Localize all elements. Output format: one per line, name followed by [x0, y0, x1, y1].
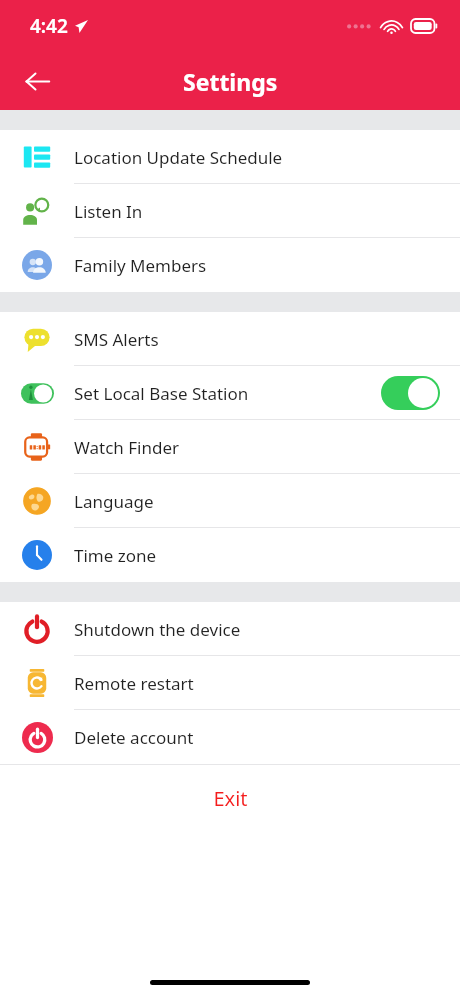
button[interactable]: Back — [12, 56, 62, 106]
button[interactable]: Language — [0, 474, 460, 528]
staticText: Watch Finder — [74, 436, 180, 459]
button[interactable]: Remote restart — [0, 656, 460, 710]
staticText: Location Update Schedule — [74, 146, 283, 169]
button[interactable]: Location Update Schedule — [0, 130, 460, 184]
staticText: SMS Alerts — [74, 328, 159, 351]
staticText: Shutdown the device — [74, 618, 241, 641]
staticText: Settings — [183, 66, 278, 97]
staticText: Exit — [213, 785, 248, 812]
staticText: Family Members — [74, 254, 207, 277]
button[interactable]: Family Members — [0, 238, 460, 292]
button[interactable]: Watch Finder — [0, 420, 460, 474]
staticText: Remote restart — [74, 672, 194, 695]
staticText: Set Local Base Station — [74, 382, 249, 405]
staticText: Language — [74, 490, 154, 513]
button[interactable]: Listen In — [0, 184, 460, 238]
staticText: Time zone — [74, 544, 157, 567]
button[interactable]: Set Local Base Station — [0, 366, 460, 420]
button[interactable]: Exit — [0, 765, 460, 831]
staticText: 4:42 — [30, 13, 68, 39]
button[interactable]: Delete account — [0, 710, 460, 764]
button[interactable]: Shutdown the device — [0, 602, 460, 656]
button[interactable]: Toggle base station — [381, 376, 440, 410]
button[interactable]: Time zone — [0, 528, 460, 582]
button[interactable]: SMS Alerts — [0, 312, 460, 366]
staticText: Delete account — [74, 726, 194, 749]
staticText: Listen In — [74, 200, 143, 223]
